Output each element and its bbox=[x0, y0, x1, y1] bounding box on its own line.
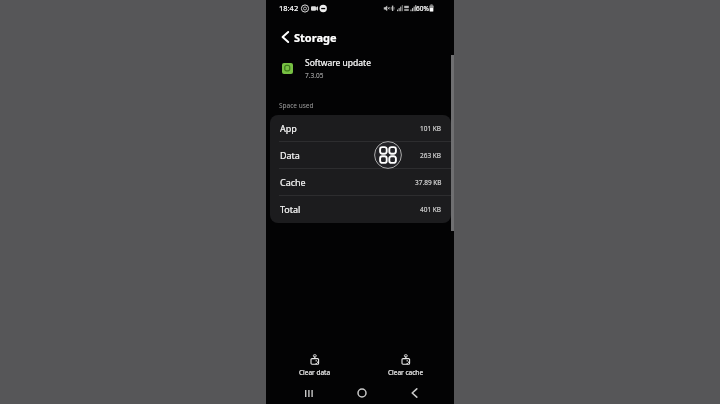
staticText: 37.89 KB bbox=[415, 178, 442, 187]
button[interactable]: Software update bbox=[282, 56, 442, 80]
staticText: Clear data bbox=[299, 368, 331, 377]
staticText: 401 KB bbox=[420, 205, 442, 214]
button[interactable] bbox=[274, 26, 296, 48]
staticText: App bbox=[280, 122, 297, 134]
button[interactable]: Data bbox=[270, 142, 451, 168]
staticText: Storage bbox=[294, 30, 337, 45]
staticText: Data bbox=[280, 149, 300, 161]
staticText: 263 KB bbox=[420, 151, 442, 160]
button[interactable]: App bbox=[270, 115, 451, 141]
button[interactable] bbox=[404, 384, 425, 402]
button[interactable] bbox=[298, 384, 319, 402]
button[interactable] bbox=[351, 384, 372, 402]
button[interactable]: Cache bbox=[270, 169, 451, 195]
staticText: Total bbox=[280, 203, 301, 215]
staticText: Clear cache bbox=[388, 368, 424, 377]
staticText: Software update bbox=[305, 57, 371, 69]
button[interactable]: Clear cache bbox=[386, 354, 426, 378]
button[interactable]: Clear data bbox=[295, 354, 335, 378]
staticText: 60% bbox=[416, 4, 429, 13]
staticText: 7.3.05 bbox=[305, 71, 324, 80]
staticText: 18:42 bbox=[279, 3, 299, 13]
staticText: Space used bbox=[279, 101, 314, 110]
staticText: 101 KB bbox=[420, 124, 442, 133]
staticText: Cache bbox=[280, 176, 306, 188]
button[interactable]: Total bbox=[270, 196, 451, 222]
